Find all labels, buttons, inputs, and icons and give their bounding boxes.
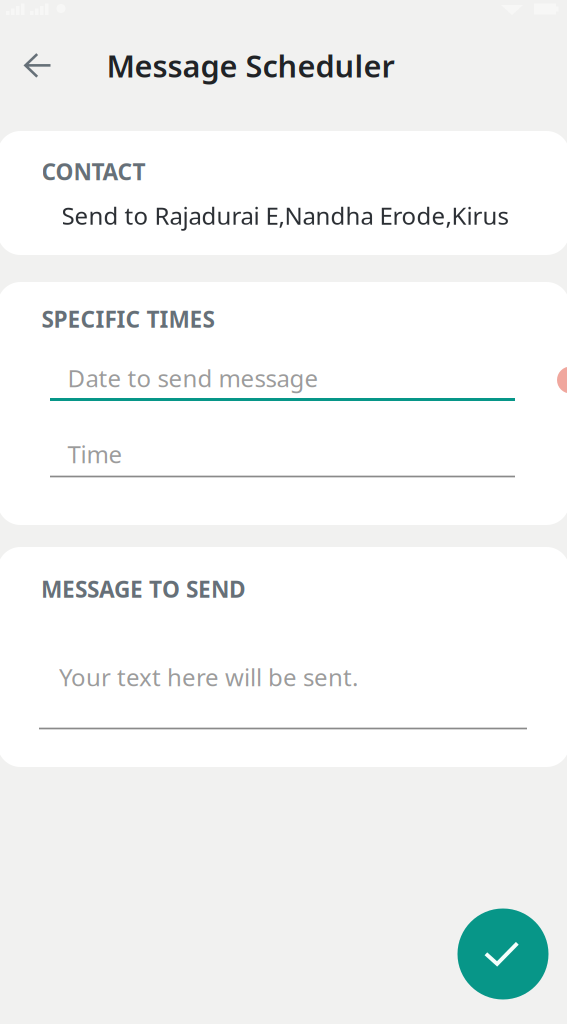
staticText: Time: [67, 438, 122, 470]
staticText: Your text here will be sent.: [59, 661, 358, 693]
staticText: Date to send message: [67, 362, 318, 394]
staticText: Send to Rajadurai E,Nandha Erode,Kirus: [61, 200, 508, 231]
staticText: SPECIFIC TIMES: [41, 304, 214, 334]
button[interactable]: Back: [11, 39, 65, 93]
staticText: MESSAGE TO SEND: [41, 574, 246, 604]
button[interactable]: Save schedule: [457, 908, 548, 999]
staticText: Message Scheduler: [107, 45, 395, 86]
staticText: CONTACT: [41, 156, 145, 186]
